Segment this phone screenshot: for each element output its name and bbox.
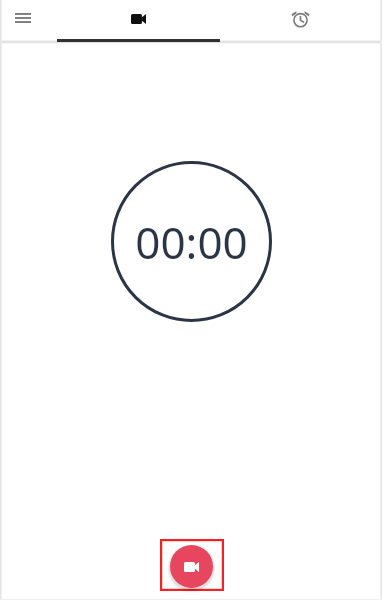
button[interactable]: Start recording (170, 545, 213, 588)
button[interactable]: Navigation menu (0, 0, 46, 36)
staticText: 00:00 (135, 212, 248, 272)
button[interactable]: Video recorder tab (57, 0, 220, 37)
button[interactable]: Scheduled recordings tab (220, 0, 382, 39)
